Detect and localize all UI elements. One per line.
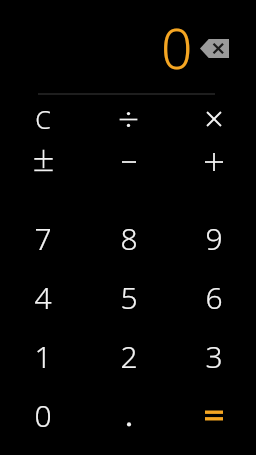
staticText: 5 — [120, 277, 138, 318]
button[interactable]: Decimal point — [86, 386, 171, 445]
staticText: 2 — [120, 336, 138, 377]
staticText: 9 — [205, 218, 223, 259]
button[interactable]: Backspace — [200, 39, 229, 58]
staticText: 7 — [34, 218, 52, 259]
button[interactable]: 6 — [171, 268, 256, 327]
button[interactable]: 5 — [86, 268, 171, 327]
button[interactable]: 3 — [171, 327, 256, 386]
button[interactable]: 7 — [0, 209, 86, 268]
staticText: C — [35, 102, 51, 136]
button[interactable]: Minus — [86, 140, 171, 184]
button[interactable]: 1 — [0, 327, 86, 386]
button[interactable]: Plus minus — [0, 140, 86, 184]
button[interactable]: 8 — [86, 209, 171, 268]
button[interactable]: 9 — [171, 209, 256, 268]
button[interactable]: 4 — [0, 268, 86, 327]
button[interactable]: Equals — [171, 386, 256, 445]
staticText: 4 — [34, 277, 52, 318]
staticText: 0 — [161, 10, 193, 85]
staticText: 8 — [120, 218, 138, 259]
button[interactable]: 2 — [86, 327, 171, 386]
staticText: 3 — [205, 336, 223, 377]
button[interactable]: 0 — [0, 386, 86, 445]
button[interactable]: Plus — [171, 140, 256, 184]
staticText: 1 — [34, 336, 52, 377]
staticText: 0 — [34, 395, 52, 436]
button[interactable]: C — [0, 98, 86, 140]
button[interactable]: Divide — [86, 98, 171, 140]
button[interactable]: Multiply — [171, 98, 256, 140]
staticText: 6 — [205, 277, 223, 318]
